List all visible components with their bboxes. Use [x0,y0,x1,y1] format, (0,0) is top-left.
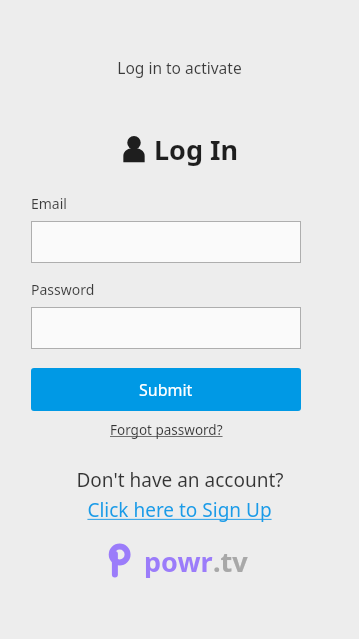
staticText: powr [144,543,213,580]
button[interactable]: Forgot password? [110,421,223,439]
staticText: Email [31,194,67,213]
staticText: Log In [154,131,239,168]
button[interactable]: Submit [31,368,301,411]
button[interactable]: Click here to Sign Up [87,497,272,523]
staticText: Submit [139,379,193,401]
staticText: Click here to Sign Up [87,497,272,523]
button[interactable] [31,221,301,263]
staticText: Forgot password? [110,421,223,439]
staticText: Password [31,280,95,299]
button[interactable] [31,307,301,349]
staticText: Log in to activate [117,57,242,78]
other: User [121,135,147,164]
staticText: .tv [213,543,248,580]
staticText: Don't have an account? [76,467,284,493]
